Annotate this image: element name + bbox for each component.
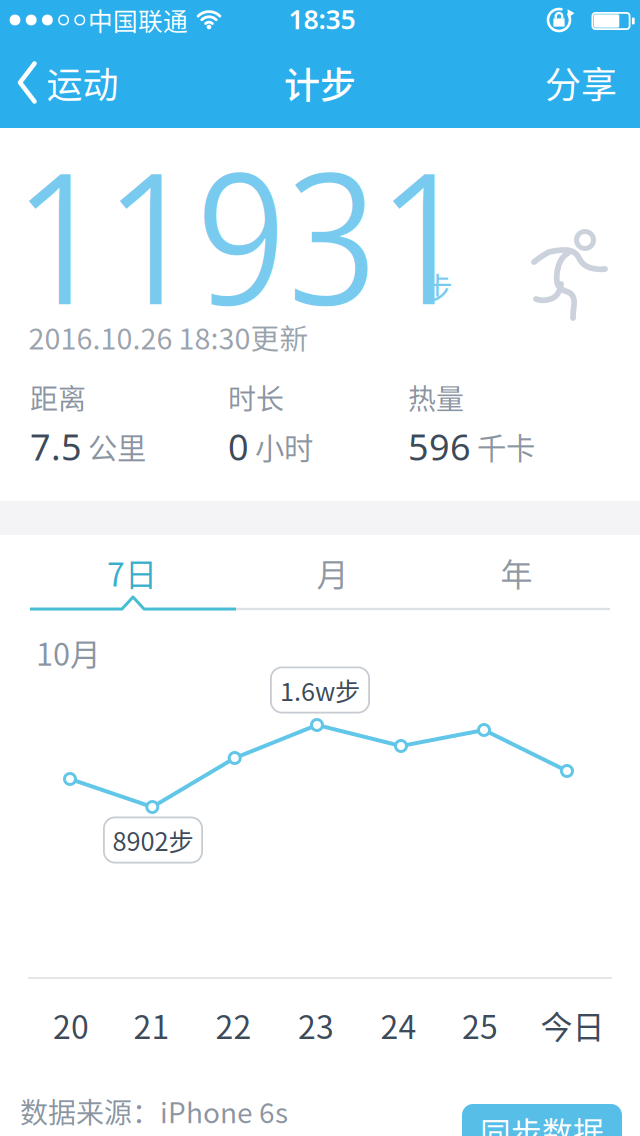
staticText: 月	[316, 549, 348, 596]
staticText: 分享	[545, 56, 617, 108]
staticText: 0	[228, 422, 249, 470]
staticText: 千卡	[477, 425, 535, 468]
staticText: 2016.10.26 18:30更新	[28, 316, 308, 358]
staticText: 21	[133, 1002, 169, 1048]
staticText: 时长	[228, 377, 284, 417]
staticText: 今日	[540, 1002, 604, 1048]
button[interactable]: 7日	[32, 540, 232, 604]
staticText: 中国联通	[88, 2, 188, 38]
staticText: 11931	[14, 110, 469, 357]
staticText: 18:35	[288, 1, 355, 37]
staticText: 7.5	[30, 422, 82, 470]
staticText: 计步	[284, 57, 356, 109]
staticText: 距离	[30, 377, 86, 417]
staticText: 运动	[46, 56, 118, 108]
button[interactable]: 运动	[17, 38, 118, 126]
staticText: 热量	[408, 377, 464, 417]
staticText: 7日	[107, 549, 157, 596]
staticText: 25	[462, 1002, 498, 1048]
button[interactable]: 分享	[526, 38, 636, 126]
staticText: 数据来源：iPhone 6s	[20, 1091, 288, 1131]
button[interactable]: 同步数据	[462, 1104, 622, 1136]
button[interactable]: 年	[431, 540, 601, 604]
staticText: 596	[408, 422, 471, 470]
staticText: 小时	[255, 425, 313, 468]
staticText: 8902步	[112, 822, 193, 858]
staticText: 20	[53, 1002, 89, 1048]
staticText: 公里	[88, 425, 146, 468]
staticText: 年	[500, 549, 532, 596]
staticText: 步	[421, 264, 452, 310]
staticText: 23	[298, 1002, 334, 1048]
staticText: 10月	[36, 630, 101, 675]
staticText: 1.6w步	[280, 672, 360, 708]
staticText: 同步数据	[480, 1109, 604, 1136]
staticText: 22	[215, 1002, 251, 1048]
button[interactable]: 月	[247, 540, 417, 604]
staticText: 24	[380, 1002, 416, 1048]
